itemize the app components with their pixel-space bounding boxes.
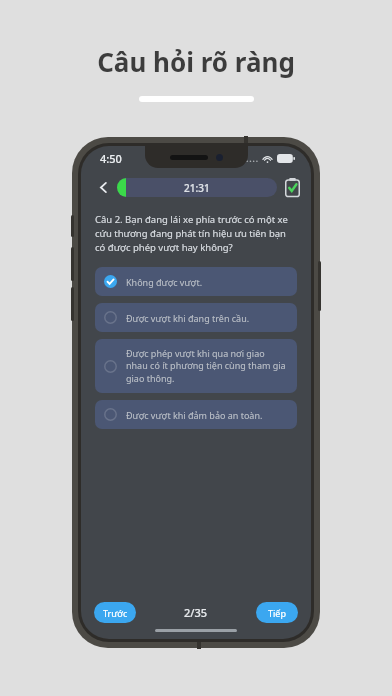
- staticText: Được vượt khi đang trên cầu.: [126, 312, 250, 324]
- staticText: Câu hỏi rõ ràng: [97, 44, 295, 79]
- staticText: Được phép vượt khi qua nơi giao nhau có …: [126, 347, 288, 385]
- staticText: 21:31: [184, 181, 210, 195]
- button[interactable]: Review answers: [285, 178, 300, 197]
- staticText: Trước: [103, 607, 128, 619]
- button[interactable]: Được phép vượt khi qua nơi giao nhau có …: [95, 339, 297, 393]
- staticText: Không được vượt.: [126, 276, 203, 288]
- staticText: 2/35: [184, 605, 208, 620]
- button[interactable]: Trước: [94, 602, 136, 623]
- button[interactable]: Tiếp: [256, 602, 298, 623]
- staticText: 4:50: [100, 151, 122, 166]
- button[interactable]: Được vượt khi đang trên cầu.: [95, 303, 297, 332]
- button[interactable]: Không được vượt.: [95, 267, 297, 296]
- staticText: Tiếp: [268, 607, 286, 619]
- staticText: Được vượt khi đảm bảo an toàn.: [126, 409, 263, 421]
- button[interactable]: Back: [92, 176, 114, 198]
- button[interactable]: Được vượt khi đảm bảo an toàn.: [95, 400, 297, 429]
- staticText: Câu 2. Bạn đang lái xe phía trước có một…: [95, 213, 297, 254]
